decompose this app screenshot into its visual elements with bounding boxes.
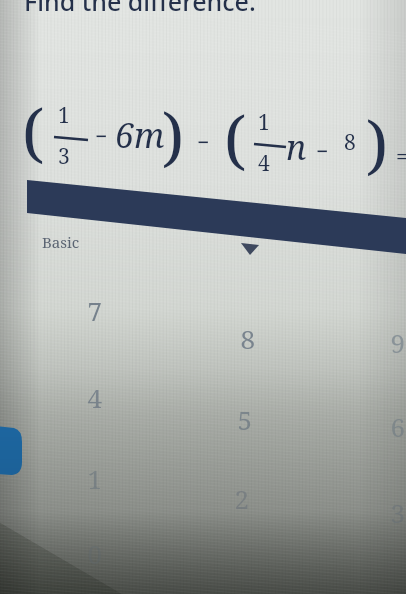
button[interactable]: 5 (198, 364, 294, 444)
button[interactable]: 9 (350, 278, 406, 358)
button[interactable]: 8 (198, 278, 294, 358)
button[interactable]: Open side panel (0, 424, 24, 478)
button[interactable]: Basic keyboard, change mode (34, 228, 264, 262)
button[interactable]: 2 (198, 448, 294, 528)
button[interactable]: 1 (47, 448, 143, 528)
button[interactable]: 6 (350, 364, 406, 444)
button[interactable]: 4 (47, 364, 143, 444)
button[interactable]: 0 (47, 515, 143, 591)
button[interactable]: 3 (350, 448, 406, 528)
button[interactable]: Answer field (27, 180, 406, 225)
button[interactable]: 7 (47, 278, 143, 358)
